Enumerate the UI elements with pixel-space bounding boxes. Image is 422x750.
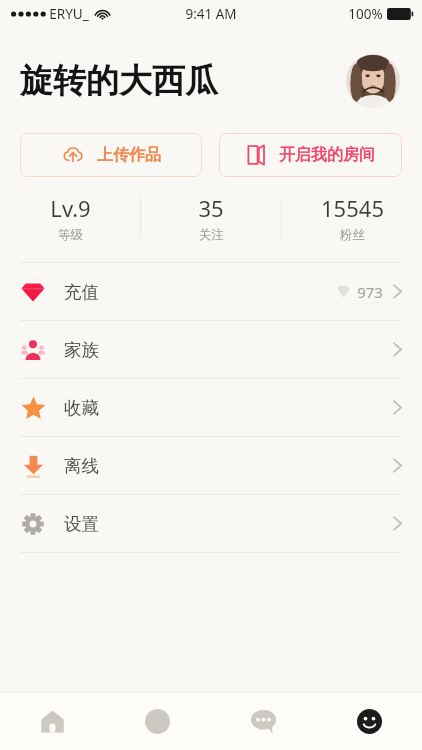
staticText: 35 [198, 193, 224, 223]
button[interactable]: 设置 [0, 495, 422, 552]
button[interactable]: Home [0, 693, 105, 750]
button[interactable]: 15545 [282, 187, 422, 249]
staticText: 离线 [64, 455, 99, 477]
button[interactable]: 充值 [0, 263, 422, 320]
staticText: Lv.9 [50, 193, 91, 223]
staticText: 973 [357, 282, 383, 302]
button[interactable]: Lv.9 [0, 187, 140, 249]
staticText: 15545 [321, 193, 384, 223]
staticText: ERYU_ [49, 5, 89, 23]
staticText: 9:41 AM [185, 5, 237, 23]
button[interactable]: Profile [316, 693, 422, 750]
staticText: 家族 [64, 339, 99, 361]
staticText: 关注 [199, 227, 224, 243]
button[interactable]: 收藏 [0, 379, 422, 436]
staticText: 100% [348, 5, 383, 23]
button[interactable]: 开启我的房间 [219, 133, 402, 177]
staticText: 设置 [64, 513, 99, 535]
button[interactable]: 上传作品 [20, 133, 202, 177]
button[interactable]: 家族 [0, 321, 422, 378]
button[interactable]: Discover [105, 693, 210, 750]
button[interactable]: 离线 [0, 437, 422, 494]
staticText: 收藏 [64, 397, 99, 419]
button[interactable]: Messages [210, 693, 316, 750]
button[interactable]: 35 [141, 187, 281, 249]
staticText: 充值 [64, 281, 99, 303]
staticText: 开启我的房间 [279, 145, 375, 165]
staticText: 等级 [58, 227, 83, 243]
button[interactable]: Profile avatar [346, 54, 400, 108]
staticText: 上传作品 [97, 145, 161, 165]
staticText: 粉丝 [340, 227, 365, 243]
staticText: 旋转的大西瓜 [20, 60, 218, 102]
